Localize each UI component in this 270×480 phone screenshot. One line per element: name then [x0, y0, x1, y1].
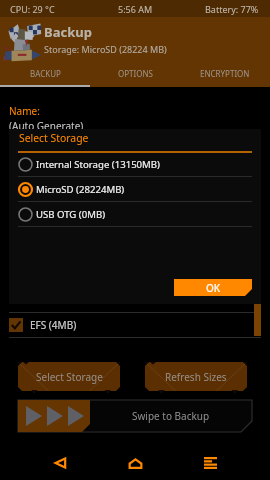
staticText: OK: [206, 281, 221, 295]
button[interactable]: Back: [23, 446, 97, 480]
button[interactable]: Swipe to Backup: [18, 400, 252, 432]
staticText: Refresh Sizes: [165, 370, 227, 384]
button[interactable]: Menu: [173, 446, 247, 480]
staticText: (Auto Generate): [9, 119, 84, 133]
button[interactable]: Select Storage: [18, 362, 120, 391]
button[interactable]: OPTIONS: [90, 63, 180, 87]
staticText: Select Storage: [19, 131, 89, 145]
button[interactable]: MicroSD (28224MB): [9, 177, 261, 201]
staticText: Internal Storage (13150MB): [36, 158, 160, 171]
button[interactable]: Refresh Sizes: [145, 362, 247, 391]
button[interactable]: OK: [174, 279, 252, 296]
staticText: OPTIONS: [118, 68, 153, 79]
staticText: Select Storage: [36, 370, 103, 384]
staticText: Backup: [44, 23, 92, 41]
button[interactable]: ENCRYPTION: [180, 63, 270, 87]
button[interactable]: Home: [98, 446, 172, 480]
staticText: MicroSD (28224MB): [36, 183, 125, 196]
button[interactable]: EFS (4MB): [0, 313, 270, 337]
staticText: 5:56 AM: [118, 3, 153, 15]
button[interactable]: Internal Storage (13150MB): [9, 152, 261, 176]
button[interactable]: BACKUP: [0, 63, 90, 87]
staticText: Swipe to Backup: [132, 409, 210, 423]
staticText: Battery: 77%: [205, 3, 259, 15]
staticText: Storage: MicroSD (28224 MB): [44, 43, 167, 55]
staticText: EFS (4MB): [30, 318, 77, 332]
button[interactable]: USB OTG (0MB): [9, 202, 261, 226]
staticText: CPU: 29 °C: [10, 3, 55, 15]
staticText: ENCRYPTION: [200, 68, 250, 79]
staticText: Name:: [9, 104, 40, 118]
staticText: USB OTG (0MB): [36, 208, 106, 221]
staticText: BACKUP: [30, 68, 61, 79]
